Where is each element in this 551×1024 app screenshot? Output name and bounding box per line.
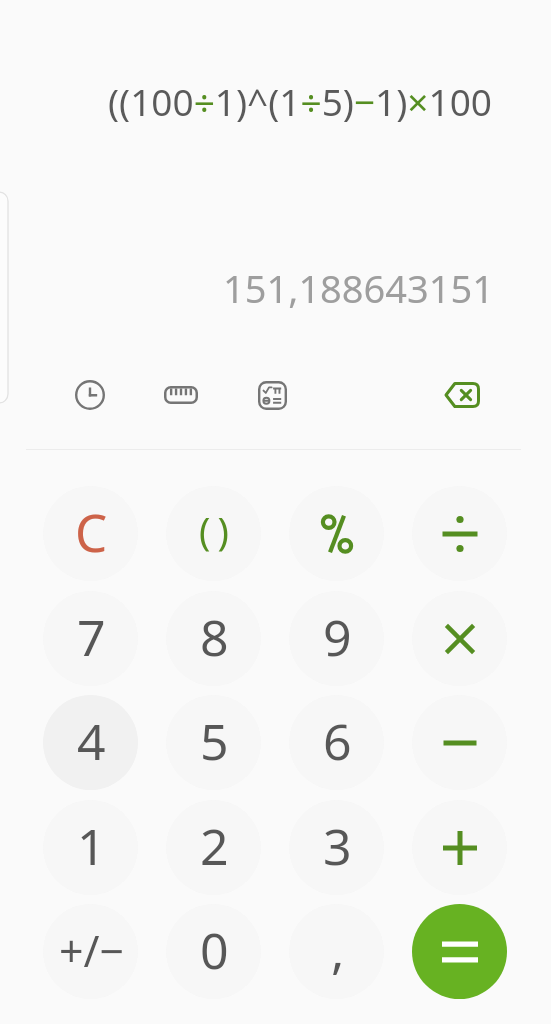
button[interactable]: Multiply	[412, 591, 507, 686]
button[interactable]: +/−	[43, 904, 138, 999]
button[interactable]: ()	[166, 486, 261, 581]
button[interactable]: Equals	[412, 904, 507, 999]
staticText: C	[75, 497, 108, 566]
button[interactable]: Plus	[412, 800, 507, 895]
staticText: 8	[200, 603, 229, 671]
staticText: +/−	[59, 921, 125, 980]
staticText: 6	[323, 707, 352, 775]
staticText: 0	[200, 916, 229, 984]
button[interactable]: 9	[289, 591, 384, 686]
staticText: 151,188643151	[222, 262, 494, 312]
button[interactable]: Backspace	[432, 366, 490, 424]
staticText: 7	[77, 603, 106, 671]
staticText: 4	[77, 707, 106, 775]
button[interactable]: 7	[43, 591, 138, 686]
staticText: 3	[323, 812, 352, 880]
staticText: 1	[77, 812, 106, 880]
button[interactable]: 0	[166, 904, 261, 999]
staticText: ,	[331, 916, 345, 984]
button[interactable]: 1	[43, 800, 138, 895]
staticText: 5	[200, 707, 229, 775]
button[interactable]: 6	[289, 695, 384, 790]
button[interactable]: Scientific calculator	[243, 366, 301, 424]
button[interactable]: 5	[166, 695, 261, 790]
staticText: ((100÷1)^(1÷5)−1)×100	[107, 76, 492, 124]
button[interactable]: Minus	[412, 695, 507, 790]
staticText: ()	[199, 504, 236, 556]
button[interactable]: C	[43, 486, 138, 581]
button[interactable]: 3	[289, 800, 384, 895]
button[interactable]: Percent	[289, 486, 384, 581]
button[interactable]: Unit converter	[152, 366, 210, 424]
staticText: 2	[200, 812, 229, 880]
button[interactable]: Divide	[412, 486, 507, 581]
button[interactable]: 8	[166, 591, 261, 686]
staticText: 9	[323, 603, 352, 671]
button[interactable]: 4	[43, 695, 138, 790]
button[interactable]: ,	[289, 904, 384, 999]
button[interactable]: 2	[166, 800, 261, 895]
button[interactable]: History	[61, 366, 119, 424]
